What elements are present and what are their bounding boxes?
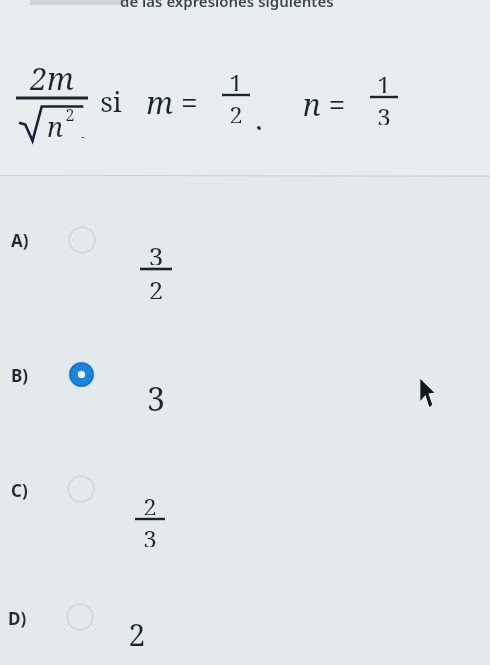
staticText: m = — [128, 82, 216, 120]
button[interactable] — [0, 596, 490, 665]
staticText: 1 — [222, 66, 250, 91]
staticText: n = — [282, 84, 366, 122]
staticText: 2 — [60, 104, 80, 126]
staticText: 2 — [222, 98, 250, 123]
staticText: A) — [11, 229, 29, 252]
staticText: n — [40, 108, 70, 142]
button[interactable]: Option D 2 — [66, 603, 94, 631]
staticText: 1 — [370, 68, 398, 93]
staticText: 2m — [16, 58, 88, 94]
staticText: 2 — [135, 490, 165, 515]
button[interactable] — [0, 468, 490, 568]
staticText: 2 — [120, 614, 154, 656]
staticText: 3 — [135, 522, 165, 547]
button[interactable]: Option A 3/2 — [68, 226, 96, 254]
button[interactable]: Option C 2/3 — [67, 475, 95, 503]
staticText: D) — [8, 607, 27, 630]
button[interactable] — [0, 215, 490, 320]
staticText: 3 — [140, 238, 172, 265]
button[interactable]: Option B 3, selected — [68, 361, 95, 388]
staticText: , — [76, 112, 92, 138]
staticText: 2 — [140, 272, 172, 299]
staticText: si — [94, 82, 128, 118]
button[interactable] — [0, 350, 490, 440]
staticText: 3 — [370, 100, 398, 125]
staticText: , — [252, 100, 268, 130]
staticText: de las expresiones siguientes — [120, 0, 334, 11]
staticText: B) — [11, 364, 29, 387]
staticText: C) — [11, 479, 28, 502]
staticText: 3 — [138, 377, 174, 419]
